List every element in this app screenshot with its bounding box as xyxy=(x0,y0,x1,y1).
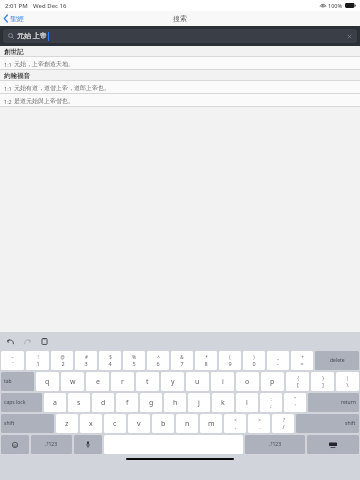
button[interactable]: p xyxy=(261,372,284,391)
staticText: 創世記 xyxy=(4,48,24,56)
button[interactable]: & xyxy=(171,351,193,370)
button[interactable]: ) xyxy=(243,351,265,370)
button[interactable]: Dictation xyxy=(74,435,102,454)
staticText: - xyxy=(277,360,279,367)
button[interactable]: | xyxy=(336,372,359,391)
button[interactable]: d xyxy=(92,393,114,412)
button[interactable]: n xyxy=(176,414,198,433)
button[interactable]: ~ xyxy=(1,351,24,370)
staticText: g xyxy=(149,398,154,408)
button[interactable]: ( xyxy=(219,351,241,370)
button[interactable]: @ xyxy=(51,351,73,370)
button[interactable]: x xyxy=(80,414,102,433)
button[interactable]: k xyxy=(212,393,234,412)
button[interactable]: Emoji xyxy=(1,435,29,454)
staticText: | xyxy=(346,375,349,381)
button[interactable]: .?123 xyxy=(31,435,72,454)
staticText: . xyxy=(259,423,261,430)
button[interactable]: Redo xyxy=(22,336,33,347)
staticText: Wed Dec 16 xyxy=(33,2,67,10)
button[interactable]: c xyxy=(104,414,126,433)
staticText: o xyxy=(245,377,250,387)
button[interactable]: 聖經 xyxy=(0,12,30,25)
staticText: & xyxy=(180,354,184,360)
staticText: shift xyxy=(345,420,356,427)
button[interactable]: { xyxy=(286,372,309,391)
button[interactable]: Clear xyxy=(346,33,353,40)
button[interactable]: u xyxy=(186,372,209,391)
button[interactable]: r xyxy=(111,372,134,391)
staticText: 9 xyxy=(228,360,232,367)
button[interactable]: z xyxy=(56,414,78,433)
staticText: 3 xyxy=(84,360,88,367)
button[interactable]: > xyxy=(248,414,270,433)
staticText: q xyxy=(45,377,50,387)
button[interactable]: a xyxy=(44,393,66,412)
staticText: < xyxy=(234,417,237,423)
button[interactable]: .?123 xyxy=(245,435,305,454)
staticText: ~ xyxy=(11,354,14,360)
button[interactable]: ? xyxy=(272,414,294,433)
staticText: b xyxy=(161,419,166,429)
button[interactable]: s xyxy=(68,393,90,412)
button[interactable]: return xyxy=(308,393,359,412)
button[interactable]: q xyxy=(36,372,59,391)
button[interactable]: y xyxy=(161,372,184,391)
staticText: ] xyxy=(322,381,324,388)
button[interactable]: v xyxy=(128,414,150,433)
button[interactable]: w xyxy=(61,372,84,391)
button[interactable]: shift xyxy=(296,414,359,433)
button[interactable]: j xyxy=(188,393,210,412)
button[interactable]: Hide keyboard xyxy=(307,435,359,454)
staticText: 1:1 xyxy=(4,61,12,68)
button[interactable]: 1:1 xyxy=(0,81,360,94)
button[interactable]: tab xyxy=(1,372,34,391)
staticText: : xyxy=(270,396,272,402)
staticText: .?123 xyxy=(269,441,282,448)
button[interactable]: # xyxy=(75,351,97,370)
staticText: 6 xyxy=(156,360,160,367)
staticText: 搜索 xyxy=(173,14,187,23)
button[interactable]: delete xyxy=(315,351,359,370)
button[interactable]: g xyxy=(140,393,162,412)
button[interactable]: b xyxy=(152,414,174,433)
button[interactable]: " xyxy=(284,393,306,412)
button[interactable]: ! xyxy=(26,351,49,370)
button[interactable]: } xyxy=(311,372,334,391)
button[interactable]: m xyxy=(200,414,222,433)
button[interactable]: : xyxy=(260,393,282,412)
staticText: 元始，上帝創造天地。 xyxy=(14,60,74,68)
staticText: i xyxy=(222,377,224,387)
button[interactable]: l xyxy=(236,393,258,412)
staticText: 元始 上帝 xyxy=(17,31,47,41)
staticText: k xyxy=(221,398,225,408)
staticText: 元始有道，道偕上帝，道郎上帝也。 xyxy=(14,84,110,92)
staticText: shift xyxy=(4,420,15,427)
button[interactable]: Undo xyxy=(5,336,16,347)
staticText: * xyxy=(205,354,208,360)
button[interactable]: i xyxy=(211,372,234,391)
button[interactable]: shift xyxy=(1,414,54,433)
button[interactable]: $ xyxy=(99,351,121,370)
button[interactable]: o xyxy=(236,372,259,391)
staticText: ' xyxy=(294,402,296,409)
button[interactable]: h xyxy=(164,393,186,412)
button[interactable]: ^ xyxy=(147,351,169,370)
button[interactable]: t xyxy=(136,372,159,391)
button[interactable]: _ xyxy=(267,351,289,370)
staticText: j xyxy=(198,398,200,408)
staticText: 是道元始與上帝偕也。 xyxy=(14,97,74,105)
button[interactable]: < xyxy=(224,414,246,433)
button[interactable]: caps lock xyxy=(1,393,42,412)
button[interactable]: f xyxy=(116,393,138,412)
button[interactable]: 1:2 xyxy=(0,94,360,107)
button[interactable]: Paste xyxy=(39,336,50,347)
button[interactable]: 1:1 xyxy=(0,57,360,70)
button[interactable]: e xyxy=(86,372,109,391)
button[interactable]: * xyxy=(195,351,217,370)
staticText: % xyxy=(132,354,136,360)
button[interactable]: 元始 上帝 xyxy=(3,29,357,43)
button[interactable]: + xyxy=(291,351,313,370)
button[interactable]: % xyxy=(123,351,145,370)
